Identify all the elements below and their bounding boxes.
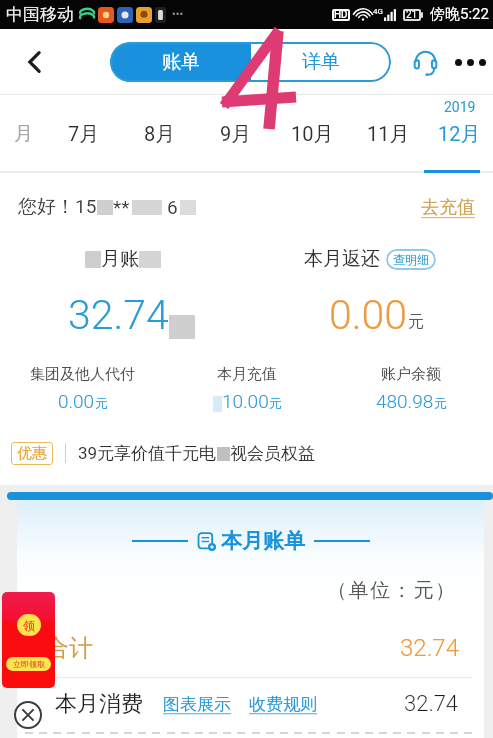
staticText: 账户余额	[381, 365, 441, 384]
button[interactable]: Close ad	[14, 701, 42, 729]
staticText: 8月	[144, 122, 176, 147]
button[interactable]: 11月	[350, 95, 426, 173]
button[interactable]: 7月	[46, 95, 122, 173]
staticText: 元	[95, 395, 108, 411]
staticText: 11月	[367, 122, 410, 147]
button[interactable]: 月	[0, 95, 46, 173]
button[interactable]: 10月	[274, 95, 350, 173]
staticText: （单位：元）	[327, 578, 457, 603]
staticText: 本月充值	[217, 365, 277, 384]
staticText: 收费规则	[249, 694, 317, 715]
staticText: 领	[23, 618, 35, 633]
staticText: 视会员权益	[230, 443, 315, 464]
staticText: 合计	[45, 633, 93, 663]
button[interactable]: More options	[448, 37, 492, 87]
staticText: 立即领取	[13, 659, 45, 669]
staticText: 480.98	[376, 390, 434, 412]
button[interactable]: 查明细	[386, 249, 436, 270]
button[interactable]: 本月消费	[55, 678, 459, 730]
staticText: 月账	[101, 247, 139, 271]
staticText: 10.00	[222, 390, 269, 412]
staticText: 元	[269, 395, 282, 411]
button[interactable]: 集团及他人代付	[0, 347, 165, 421]
button[interactable]: 合计	[45, 619, 459, 677]
staticText: 集团及他人代付	[30, 365, 135, 384]
button[interactable]: 本月充值	[165, 347, 329, 421]
staticText: •••	[172, 8, 184, 21]
button[interactable]: Back	[0, 29, 110, 95]
staticText: 10月	[291, 122, 334, 147]
staticText: 元	[434, 395, 447, 411]
staticText: 元	[408, 312, 424, 332]
staticText: 本月账单	[221, 528, 305, 554]
staticText: 9月	[220, 122, 252, 147]
staticText: 您好！15	[18, 195, 97, 219]
button[interactable]: 去充值	[421, 196, 475, 219]
staticText: 中国移动	[6, 4, 74, 25]
staticText: 0.00	[58, 390, 95, 412]
staticText: 21	[406, 9, 418, 21]
button[interactable]: 8月	[122, 95, 198, 173]
staticText: 4G	[373, 7, 383, 16]
button[interactable]: Claim red packet promotion	[2, 592, 55, 688]
staticText: 6	[167, 196, 178, 218]
staticText: 32.74	[68, 291, 169, 339]
staticText: 详单	[302, 50, 340, 74]
button[interactable]: 账户余额	[329, 347, 493, 421]
staticText: 本月返还	[304, 247, 380, 271]
staticText: 去充值	[421, 196, 475, 219]
staticText: 图表展示	[163, 694, 231, 715]
staticText: 32.74	[400, 634, 459, 662]
staticText: 傍晚5:22	[430, 5, 489, 24]
button[interactable]: 12月	[426, 95, 493, 173]
button[interactable]: 账单	[110, 42, 251, 82]
staticText: 0.00	[329, 291, 408, 339]
staticText: **	[113, 196, 130, 218]
staticText: 优惠	[17, 444, 47, 463]
staticText: 12月	[438, 122, 481, 147]
staticText: 7月	[68, 122, 100, 147]
staticText: 本月消费	[55, 690, 143, 718]
button[interactable]: 9月	[198, 95, 274, 173]
staticText: 32.74	[404, 691, 459, 717]
button[interactable]: Customer service	[402, 37, 448, 87]
button[interactable]: 详单	[251, 42, 391, 82]
staticText: 2019	[444, 99, 476, 115]
staticText: 月	[14, 122, 33, 146]
staticText: HD	[334, 9, 348, 21]
staticText: 查明细	[393, 252, 429, 267]
staticText: 39元享价值千元电	[78, 443, 217, 464]
staticText: 账单	[162, 50, 200, 74]
